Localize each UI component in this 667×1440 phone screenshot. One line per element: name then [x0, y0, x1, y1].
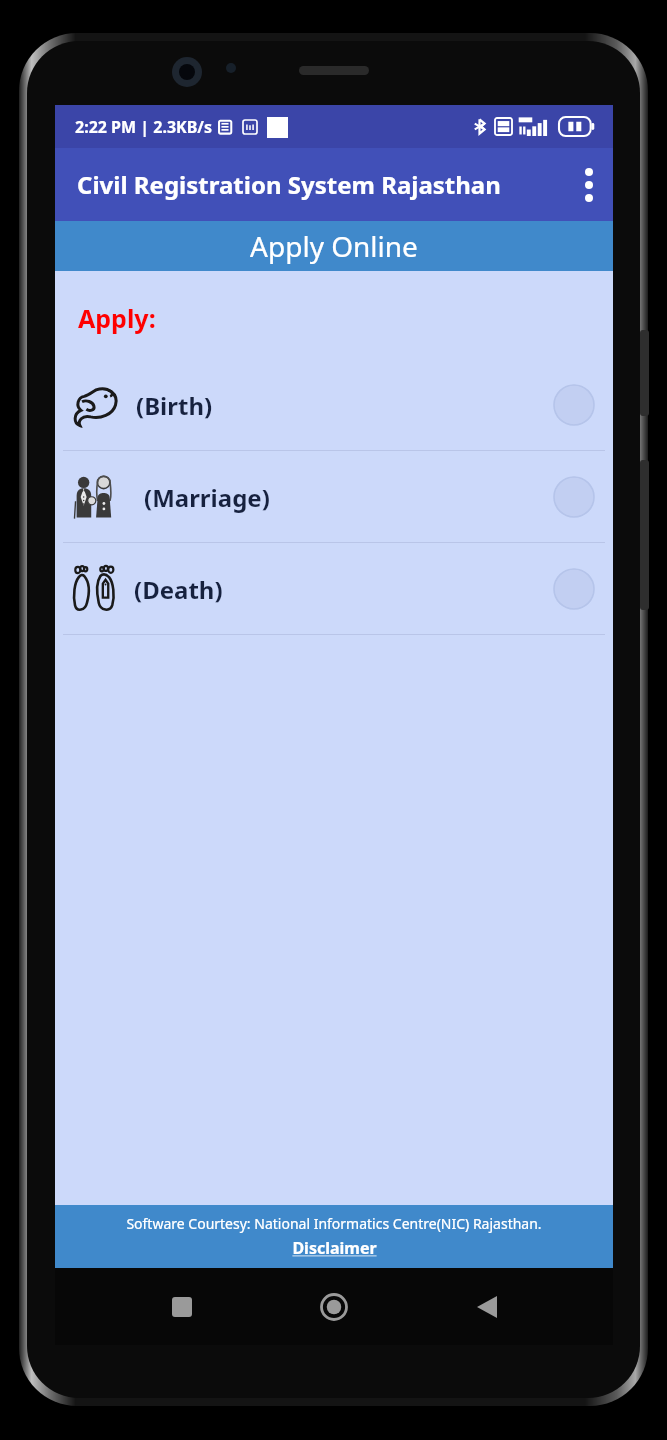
button[interactable]: (Death)	[55, 543, 613, 634]
staticText: Software Courtesy: National Informatics …	[126, 1214, 542, 1233]
button[interactable]: Home	[308, 1281, 360, 1333]
staticText: (Death)	[134, 573, 223, 606]
staticText: Apply Online	[250, 227, 418, 265]
staticText: 2:22 PM | 2.3KB/s	[75, 116, 213, 138]
button[interactable]: More options	[565, 148, 613, 221]
button[interactable]: Recent apps	[156, 1281, 208, 1333]
staticText: (Birth)	[136, 389, 213, 422]
button[interactable]: Back	[461, 1281, 513, 1333]
button[interactable]: (Birth)	[55, 359, 613, 450]
staticText: Civil Registration System Rajasthan	[77, 168, 501, 201]
staticText: Apply:	[78, 301, 156, 335]
staticText: (Marriage)	[144, 481, 270, 514]
button[interactable]: (Marriage)	[55, 451, 613, 542]
button[interactable]: Disclaimer	[292, 1237, 377, 1259]
staticText: Disclaimer	[292, 1237, 377, 1259]
